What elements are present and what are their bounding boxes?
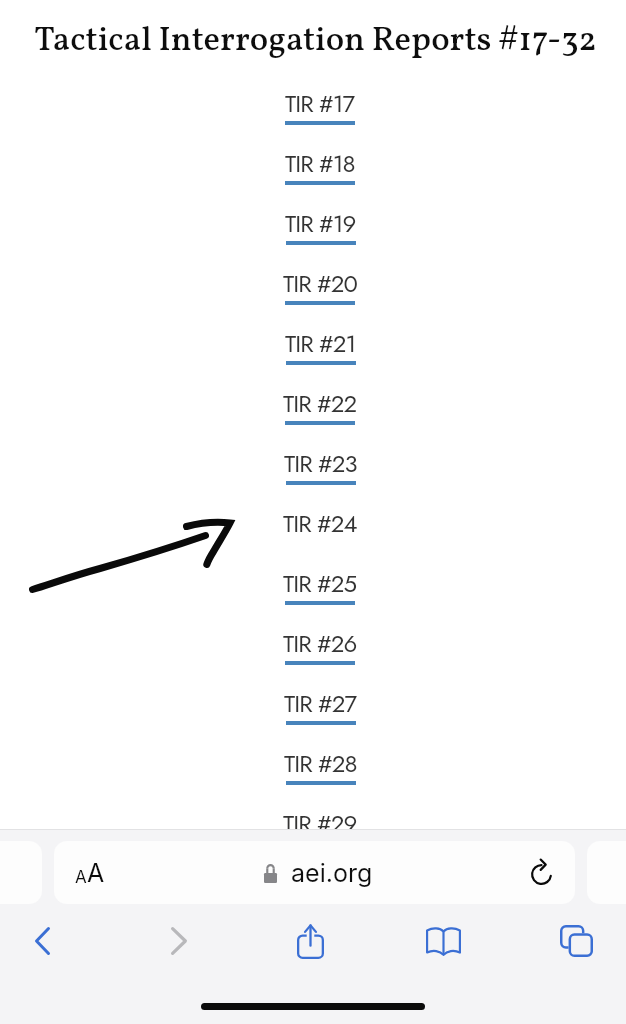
- button[interactable]: Share: [282, 913, 338, 969]
- button[interactable]: TIR #25: [7, 566, 626, 626]
- staticText: TIR #21: [285, 326, 356, 361]
- staticText: TIR #24: [283, 506, 357, 541]
- staticText: A: [75, 867, 87, 888]
- staticText: TIR #19: [285, 206, 356, 241]
- button[interactable]: TIR #28: [7, 746, 626, 806]
- button[interactable]: Tabs: [548, 913, 604, 969]
- staticText: TIR #20: [283, 266, 357, 301]
- staticText: TIR #18: [285, 146, 355, 181]
- button[interactable]: Text size options: [62, 848, 118, 898]
- staticText: TIR #26: [283, 626, 357, 661]
- button[interactable]: aei.org: [54, 841, 575, 904]
- button[interactable]: TIR #21: [7, 326, 626, 386]
- button[interactable]: TIR #23: [7, 446, 626, 506]
- staticText: TIR #17: [285, 86, 355, 121]
- button[interactable]: TIR #19: [7, 206, 626, 266]
- staticText: TIR #25: [283, 566, 357, 601]
- button[interactable]: Back: [14, 913, 70, 969]
- button[interactable]: Bookmarks: [415, 913, 471, 969]
- staticText: TIR #28: [284, 746, 357, 781]
- staticText: TIR #23: [284, 446, 357, 481]
- button[interactable]: TIR #17: [7, 86, 626, 146]
- staticText: TIR #27: [284, 686, 357, 721]
- staticText: TIR #22: [283, 386, 357, 421]
- staticText: Tactical Interrogation Reports #17-32: [34, 18, 597, 65]
- button[interactable]: TIR #20: [7, 266, 626, 326]
- button[interactable]: Reload page: [519, 851, 563, 895]
- staticText: TIR #29: [283, 806, 357, 841]
- button[interactable]: TIR #24: [7, 506, 626, 566]
- staticText: A: [87, 858, 105, 888]
- button[interactable]: TIR #22: [7, 386, 626, 446]
- button[interactable]: TIR #26: [7, 626, 626, 686]
- button[interactable]: TIR #18: [7, 146, 626, 206]
- staticText: aei.org: [277, 858, 373, 888]
- button[interactable]: TIR #27: [7, 686, 626, 746]
- button[interactable]: TIR #29: [7, 806, 626, 866]
- button[interactable]: Forward: [151, 913, 207, 969]
